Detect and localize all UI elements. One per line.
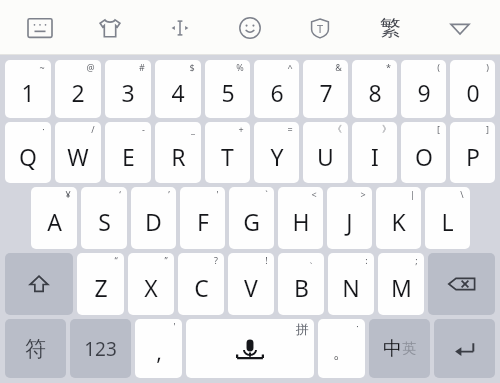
button[interactable]: Shift — [5, 253, 73, 315]
button[interactable]: J — [327, 187, 372, 249]
staticText: J — [346, 206, 353, 237]
button[interactable]: F — [180, 187, 225, 249]
staticText: · — [356, 320, 359, 332]
staticText: ’ — [168, 188, 170, 200]
button[interactable]: Backspace — [428, 253, 495, 315]
staticText: E — [122, 141, 135, 172]
staticText: A — [47, 206, 62, 237]
button[interactable]: G — [229, 187, 274, 249]
button[interactable]: K — [376, 187, 421, 249]
staticText: ' — [216, 188, 219, 200]
staticText: 123 — [84, 336, 117, 362]
staticText: M — [391, 272, 412, 303]
staticText: R — [171, 141, 186, 172]
staticText: 英 — [402, 340, 416, 358]
staticText: < — [311, 188, 317, 200]
button[interactable]: Hide keyboard — [434, 3, 486, 53]
button[interactable]: 3 — [105, 60, 151, 118]
staticText: # — [139, 61, 145, 73]
staticText: S — [98, 206, 111, 237]
button[interactable]: 中 — [369, 319, 430, 378]
staticText: % — [236, 61, 244, 73]
staticText: + — [238, 123, 244, 135]
button[interactable]: A — [31, 187, 77, 249]
staticText: ; — [415, 254, 418, 266]
button[interactable]: C — [178, 253, 224, 315]
button[interactable]: R — [155, 122, 201, 183]
button[interactable]: Emoji — [224, 3, 276, 53]
button[interactable]: 9 — [401, 60, 446, 118]
button[interactable]: H — [278, 187, 323, 249]
button[interactable]: E — [105, 122, 151, 183]
staticText: ? — [214, 254, 218, 266]
staticText: \ — [460, 188, 464, 200]
staticText: ' — [173, 320, 176, 332]
staticText: O — [415, 141, 433, 172]
staticText: ¥ — [65, 188, 71, 200]
button[interactable]: W — [55, 122, 101, 183]
staticText: 中 — [383, 337, 402, 361]
staticText: Y — [270, 141, 284, 172]
button[interactable]: 123 — [70, 319, 131, 378]
button[interactable]: L — [425, 187, 470, 249]
staticText: V — [244, 272, 258, 303]
button[interactable]: Voice input — [186, 319, 314, 378]
button[interactable]: 8 — [352, 60, 397, 118]
staticText: > — [360, 188, 366, 200]
button[interactable]: N — [328, 253, 374, 315]
button[interactable]: D — [131, 187, 176, 249]
button[interactable]: M — [378, 253, 424, 315]
button[interactable]: P — [450, 122, 495, 183]
button[interactable]: V — [228, 253, 274, 315]
button[interactable]: O — [401, 122, 446, 183]
button[interactable]: 2 — [55, 60, 101, 118]
staticText: 5 — [221, 77, 235, 108]
staticText: 0 — [466, 77, 480, 108]
staticText: W — [67, 141, 89, 172]
button[interactable]: T — [205, 122, 250, 183]
staticText: 1 — [21, 77, 35, 108]
button[interactable]: , — [135, 319, 182, 378]
staticText: Z — [94, 272, 108, 303]
button[interactable]: 5 — [205, 60, 250, 118]
staticText: Q — [19, 141, 37, 172]
staticText: 。 — [333, 342, 350, 363]
staticText: 、 — [309, 254, 318, 265]
button[interactable]: I — [352, 122, 397, 183]
button[interactable]: Keyboard — [14, 3, 66, 53]
staticText: H — [292, 206, 310, 237]
button[interactable]: 符 — [5, 319, 66, 378]
button[interactable]: 1 — [5, 60, 51, 118]
button[interactable]: Theme — [84, 3, 136, 53]
button[interactable]: U — [303, 122, 348, 183]
button[interactable]: Privacy — [294, 3, 346, 53]
staticText: 符 — [25, 336, 46, 362]
button[interactable]: S — [81, 187, 127, 249]
staticText: ‘ — [119, 188, 121, 200]
staticText: $ — [189, 61, 195, 73]
staticText: T — [317, 21, 324, 36]
button[interactable]: 0 — [450, 60, 495, 118]
staticText: F — [197, 206, 209, 237]
staticText: _ — [191, 123, 195, 135]
button[interactable]: Z — [77, 253, 124, 315]
button[interactable]: Y — [254, 122, 299, 183]
staticText: 》 — [382, 123, 391, 134]
staticText: [ — [437, 123, 440, 135]
staticText: X — [144, 272, 158, 303]
staticText: , — [156, 338, 162, 367]
button[interactable]: B — [278, 253, 324, 315]
button[interactable]: Edit text — [154, 3, 206, 53]
staticText: * — [386, 61, 391, 73]
staticText: ( — [437, 61, 440, 73]
button[interactable]: 繁 — [364, 3, 416, 53]
button[interactable]: Q — [5, 122, 51, 183]
staticText: B — [294, 272, 309, 303]
button[interactable]: Enter — [434, 319, 495, 378]
button[interactable]: 6 — [254, 60, 299, 118]
button[interactable]: 。 — [318, 319, 365, 378]
button[interactable]: 4 — [155, 60, 201, 118]
button[interactable]: X — [128, 253, 174, 315]
staticText: G — [243, 206, 260, 237]
button[interactable]: 7 — [303, 60, 348, 118]
